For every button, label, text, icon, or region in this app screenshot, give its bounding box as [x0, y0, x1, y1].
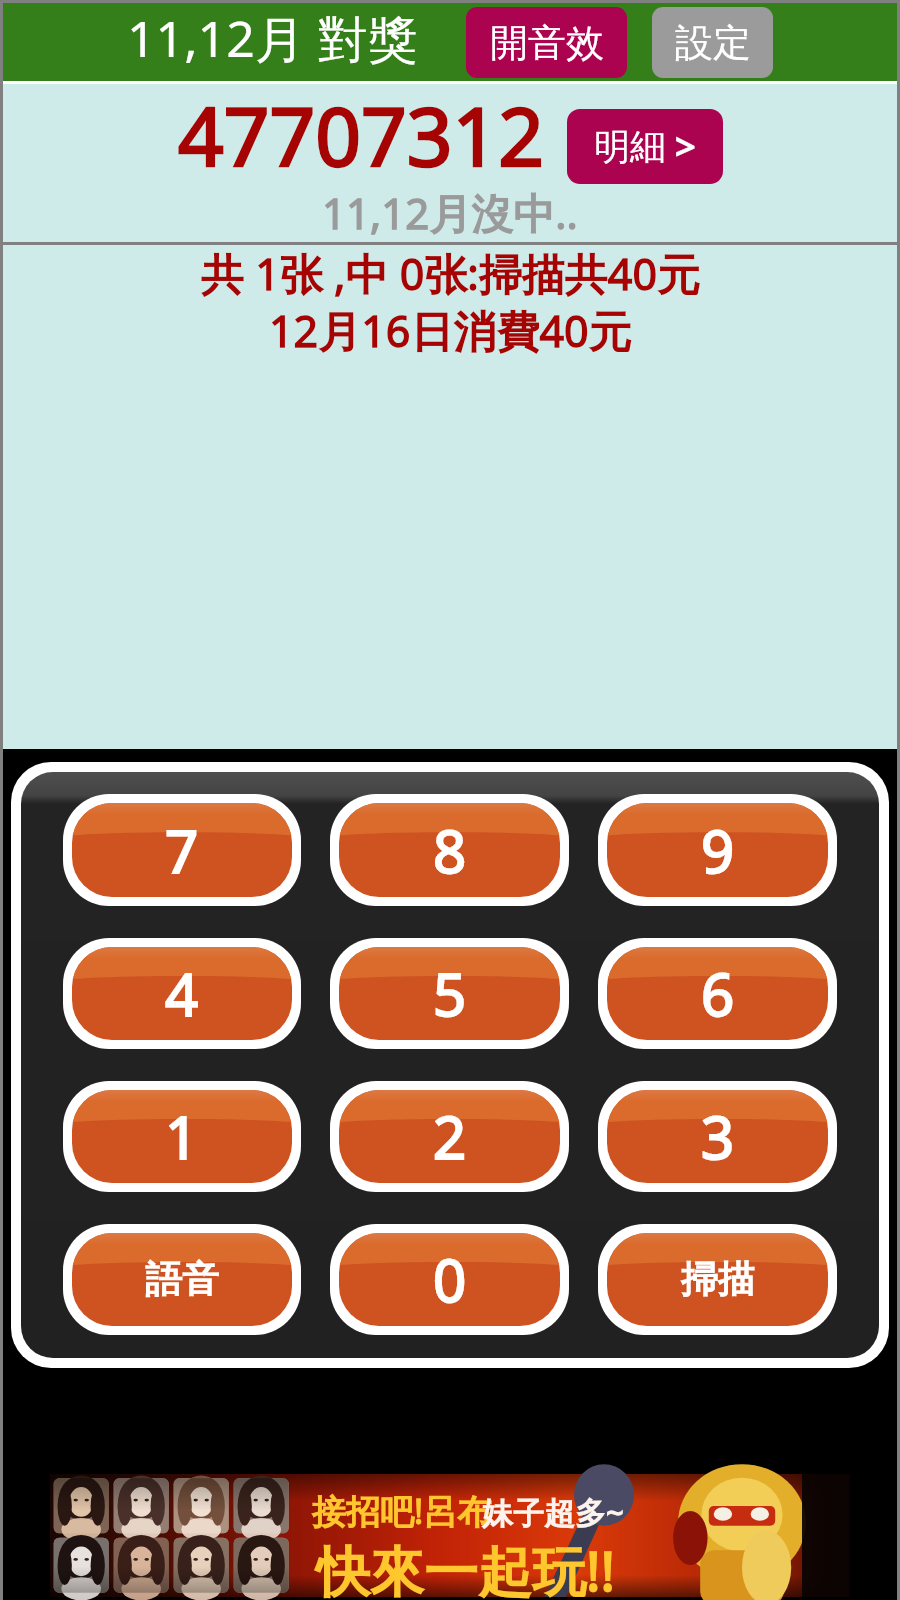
- staticText: 11,12月沒中..: [322, 184, 578, 241]
- staticText: 共 1张 ,中 0张:掃描共40元: [201, 244, 700, 300]
- button[interactable]: 6: [598, 938, 837, 1049]
- staticText: 9: [701, 811, 735, 890]
- staticText: 6: [701, 954, 735, 1033]
- button[interactable]: 4: [63, 938, 301, 1049]
- button[interactable]: 8: [330, 794, 569, 906]
- button[interactable]: 0: [330, 1224, 569, 1335]
- staticText: 設定: [675, 19, 751, 67]
- button[interactable]: 9: [598, 794, 837, 906]
- button[interactable]: 設定: [652, 7, 773, 78]
- staticText: 明細: [594, 124, 666, 169]
- button[interactable]: Advertisement 接招吧 呂布: [50, 1474, 850, 1597]
- staticText: 開音效: [490, 19, 604, 67]
- staticText: 快來一起玩!!: [316, 1533, 616, 1600]
- staticText: 0: [433, 1240, 467, 1319]
- staticText: 妹子超多~: [482, 1491, 624, 1533]
- button[interactable]: 5: [330, 938, 569, 1049]
- staticText: 語音: [145, 1256, 219, 1303]
- staticText: 接招吧!呂布: [312, 1488, 492, 1534]
- staticText: 11,12月 對獎: [127, 4, 418, 72]
- staticText: 8: [433, 811, 467, 890]
- staticText: 47707312: [178, 80, 545, 189]
- staticText: 7: [165, 811, 199, 890]
- button[interactable]: 2: [330, 1081, 569, 1192]
- staticText: 3: [701, 1097, 735, 1176]
- staticText: >: [675, 122, 696, 171]
- button[interactable]: 語音: [63, 1224, 301, 1335]
- staticText: 1: [165, 1097, 199, 1176]
- button[interactable]: 開音效: [466, 7, 627, 78]
- staticText: 12月16日消費40元: [269, 301, 632, 357]
- button[interactable]: 3: [598, 1081, 837, 1192]
- button[interactable]: 1: [63, 1081, 301, 1192]
- button[interactable]: 7: [63, 794, 301, 906]
- staticText: 4: [165, 954, 199, 1033]
- button[interactable]: 明細: [567, 109, 723, 184]
- staticText: 2: [433, 1097, 467, 1176]
- button[interactable]: 掃描: [598, 1224, 837, 1335]
- staticText: 5: [433, 954, 467, 1033]
- staticText: 掃描: [681, 1256, 755, 1303]
